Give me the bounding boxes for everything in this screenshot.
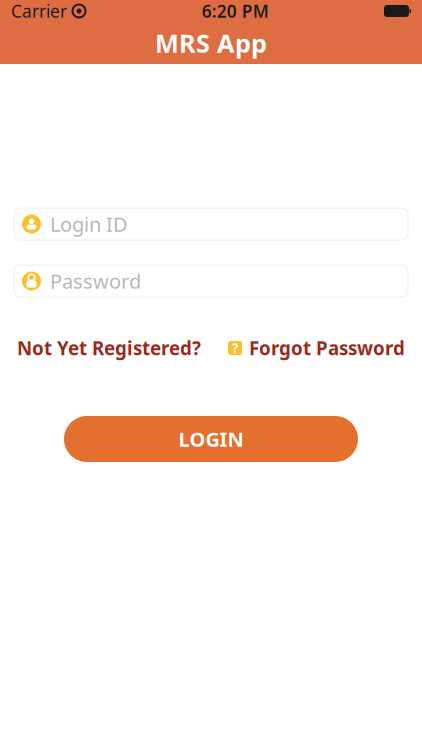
staticText: Forgot Password — [249, 336, 405, 360]
staticText: Login ID — [50, 211, 128, 237]
button[interactable]: LOGIN — [64, 416, 358, 462]
button[interactable]: ? — [228, 336, 405, 360]
button[interactable]: Not Yet Registered? — [17, 336, 201, 360]
staticText: Not Yet Registered? — [17, 336, 201, 360]
staticText: LOGIN — [178, 426, 243, 452]
staticText: 6:20 PM — [202, 0, 269, 22]
staticText: MRS App — [155, 26, 267, 60]
button[interactable]: Password — [14, 265, 408, 297]
staticText: Carrier — [11, 0, 67, 22]
staticText: ? — [232, 339, 238, 357]
button[interactable]: Login ID — [14, 208, 408, 240]
staticText: Password — [50, 268, 141, 294]
